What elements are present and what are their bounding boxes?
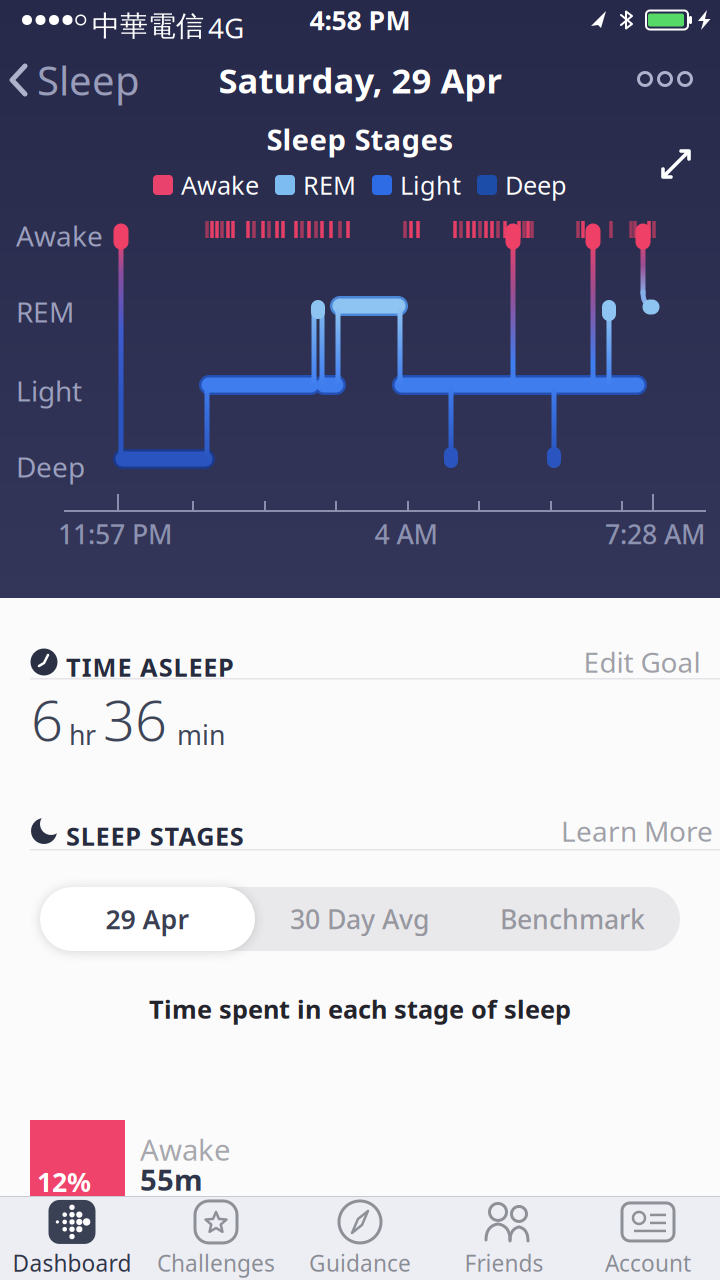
- button[interactable]: Challenges: [144, 1198, 288, 1278]
- staticText: Account: [605, 1248, 691, 1278]
- staticText: Learn More: [561, 812, 713, 850]
- staticText: SLEEP STAGES: [66, 819, 244, 853]
- button[interactable]: Benchmark: [500, 901, 645, 937]
- staticText: Awake: [181, 168, 259, 202]
- staticText: Light: [400, 168, 461, 202]
- button[interactable]: Friends: [432, 1198, 576, 1278]
- staticText: Dashboard: [12, 1248, 131, 1278]
- staticText: Benchmark: [500, 901, 645, 937]
- staticText: Deep: [16, 448, 85, 485]
- staticText: Friends: [464, 1248, 543, 1278]
- staticText: 55m: [140, 1160, 203, 1199]
- staticText: TIME ASLEEP: [66, 650, 234, 684]
- staticText: 30 Day Avg: [290, 901, 430, 937]
- staticText: 6: [31, 682, 63, 756]
- staticText: Awake: [16, 217, 103, 254]
- button[interactable]: Guidance: [288, 1198, 432, 1278]
- button[interactable]: 29 Apr: [40, 887, 255, 951]
- staticText: 11:57 PM: [58, 516, 172, 552]
- button[interactable]: Dashboard: [0, 1198, 144, 1278]
- staticText: Challenges: [157, 1248, 275, 1278]
- button[interactable]: Learn More: [561, 812, 713, 850]
- button[interactable]: Sleep: [12, 53, 140, 106]
- staticText: Deep: [505, 168, 567, 202]
- button[interactable]: Edit Goal: [583, 643, 700, 681]
- button[interactable]: [663, 147, 689, 181]
- staticText: 29 Apr: [105, 901, 189, 937]
- staticText: 4 AM: [374, 516, 437, 552]
- button[interactable]: 12%: [30, 1120, 690, 1200]
- button[interactable]: 30 Day Avg: [290, 901, 430, 937]
- staticText: REM: [16, 293, 74, 330]
- staticText: 36: [103, 682, 167, 756]
- staticText: Edit Goal: [583, 643, 700, 681]
- staticText: 中華電信: [92, 9, 204, 43]
- staticText: Awake: [140, 1130, 231, 1169]
- staticText: Guidance: [309, 1248, 411, 1278]
- staticText: 7:28 AM: [605, 516, 705, 552]
- button[interactable]: [635, 64, 695, 94]
- staticText: REM: [303, 168, 356, 202]
- staticText: Sleep Stages: [266, 119, 453, 158]
- staticText: Light: [16, 372, 82, 409]
- staticText: min: [177, 717, 225, 752]
- staticText: 12%: [37, 1164, 91, 1199]
- staticText: 4G: [208, 9, 244, 46]
- staticText: Sleep: [37, 53, 140, 106]
- staticText: hr: [69, 717, 96, 752]
- staticText: Time spent in each stage of sleep: [149, 992, 571, 1026]
- staticText: Saturday, 29 Apr: [218, 57, 501, 103]
- button[interactable]: Account: [576, 1198, 720, 1278]
- staticText: 4:58 PM: [309, 2, 410, 38]
